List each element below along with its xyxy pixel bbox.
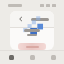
button[interactable]: Profile <box>43 51 64 64</box>
button[interactable]: Search <box>22 51 43 64</box>
button[interactable] <box>18 43 46 50</box>
button[interactable]: Home <box>0 51 22 64</box>
button[interactable]: Back <box>15 13 27 25</box>
